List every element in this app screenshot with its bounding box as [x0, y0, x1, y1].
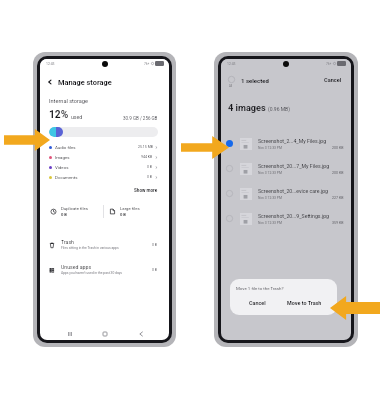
button[interactable]: Back [134, 327, 147, 340]
staticText: Trash [61, 239, 74, 245]
staticText: 944 KB [141, 155, 153, 159]
button[interactable]: Trash [48, 232, 158, 257]
staticText: 200 KB [332, 171, 344, 175]
staticText: Nov 3 12:33 PM [258, 171, 282, 175]
button[interactable]: Unused apps [48, 257, 158, 282]
staticText: Show more [134, 188, 158, 193]
staticText: Videos [55, 165, 69, 170]
other: Back [46, 78, 54, 86]
staticText: Unused apps [61, 264, 92, 270]
button[interactable]: Documents [49, 172, 158, 182]
staticText: 12% [49, 109, 69, 121]
staticText: 12:45 [46, 62, 55, 66]
staticText: Images [55, 155, 70, 160]
button[interactable]: Duplicate files [45, 202, 103, 220]
staticText: Duplicate files [61, 206, 88, 211]
staticText: 12:45 [227, 62, 236, 66]
staticText: 359 KB [332, 221, 344, 225]
staticText: Screenshot_20...evice care.jpg [258, 188, 329, 194]
button[interactable]: Screenshot_20...9_Settings.jpg [226, 206, 344, 231]
staticText: Cancel [249, 300, 266, 306]
staticText: Large files [120, 206, 140, 211]
button[interactable]: Show more [49, 186, 158, 194]
button[interactable]: Home [98, 327, 111, 340]
staticText: All [229, 84, 233, 87]
staticText: 25.15 MB [138, 145, 153, 149]
button[interactable]: Screenshot_20...evice care.jpg [226, 181, 344, 206]
staticText: (0.96 MB) [268, 106, 290, 112]
staticText: 76+ [326, 62, 332, 66]
staticText: Audio files [55, 145, 76, 150]
staticText: Files sitting in the Trash in various ap… [61, 246, 119, 250]
button[interactable]: Screenshot_2...4_My Files.jpg [226, 131, 344, 156]
staticText: 4 images [228, 102, 266, 113]
staticText: 0 B [147, 175, 153, 179]
staticText: Move to Trash [287, 300, 322, 306]
staticText: Manage storage [58, 78, 112, 87]
staticText: used [71, 114, 83, 120]
button[interactable]: Images [49, 152, 158, 162]
staticText: Documents [55, 175, 78, 180]
staticText: Screenshot_2...4_My Files.jpg [258, 138, 327, 144]
staticText: 0 B [152, 268, 158, 272]
button[interactable]: Move to Trash [278, 298, 331, 308]
button[interactable]: Screenshot_20...7_My Files.jpg [226, 156, 344, 181]
button[interactable]: Select all [225, 75, 237, 87]
button[interactable]: Back [40, 68, 169, 96]
staticText: Nov 3 12:33 PM [258, 221, 282, 225]
button[interactable]: Recents [63, 327, 76, 340]
staticText: 0 B [152, 243, 158, 247]
staticText: 76+ [144, 62, 150, 66]
button[interactable]: Audio files [49, 142, 158, 152]
button[interactable]: Cancel [236, 298, 278, 308]
button[interactable]: Cancel [324, 77, 342, 84]
staticText: Nov 3 12:33 PM [258, 196, 282, 200]
staticText: 0 B [120, 212, 126, 217]
staticText: 0 B [147, 165, 153, 169]
button[interactable]: Videos [49, 162, 158, 172]
staticText: 200 KB [332, 146, 344, 150]
staticText: Screenshot_20...7_My Files.jpg [258, 163, 330, 169]
staticText: Cancel [324, 77, 342, 84]
staticText: Nov 3 12:33 PM [258, 146, 282, 150]
staticText: 1 selected [241, 77, 269, 84]
staticText: Internal storage [49, 98, 88, 105]
staticText: Move 1 file to the Trash? [236, 286, 284, 291]
staticText: Screenshot_20...9_Settings.jpg [258, 213, 329, 219]
staticText: 227 KB [332, 196, 344, 200]
button[interactable]: Large files [104, 202, 163, 220]
staticText: 30.9 GB / 256 GB [123, 116, 158, 121]
staticText: 0 B [61, 212, 67, 217]
staticText: Apps you haven't used in the past 30 day… [61, 271, 122, 275]
